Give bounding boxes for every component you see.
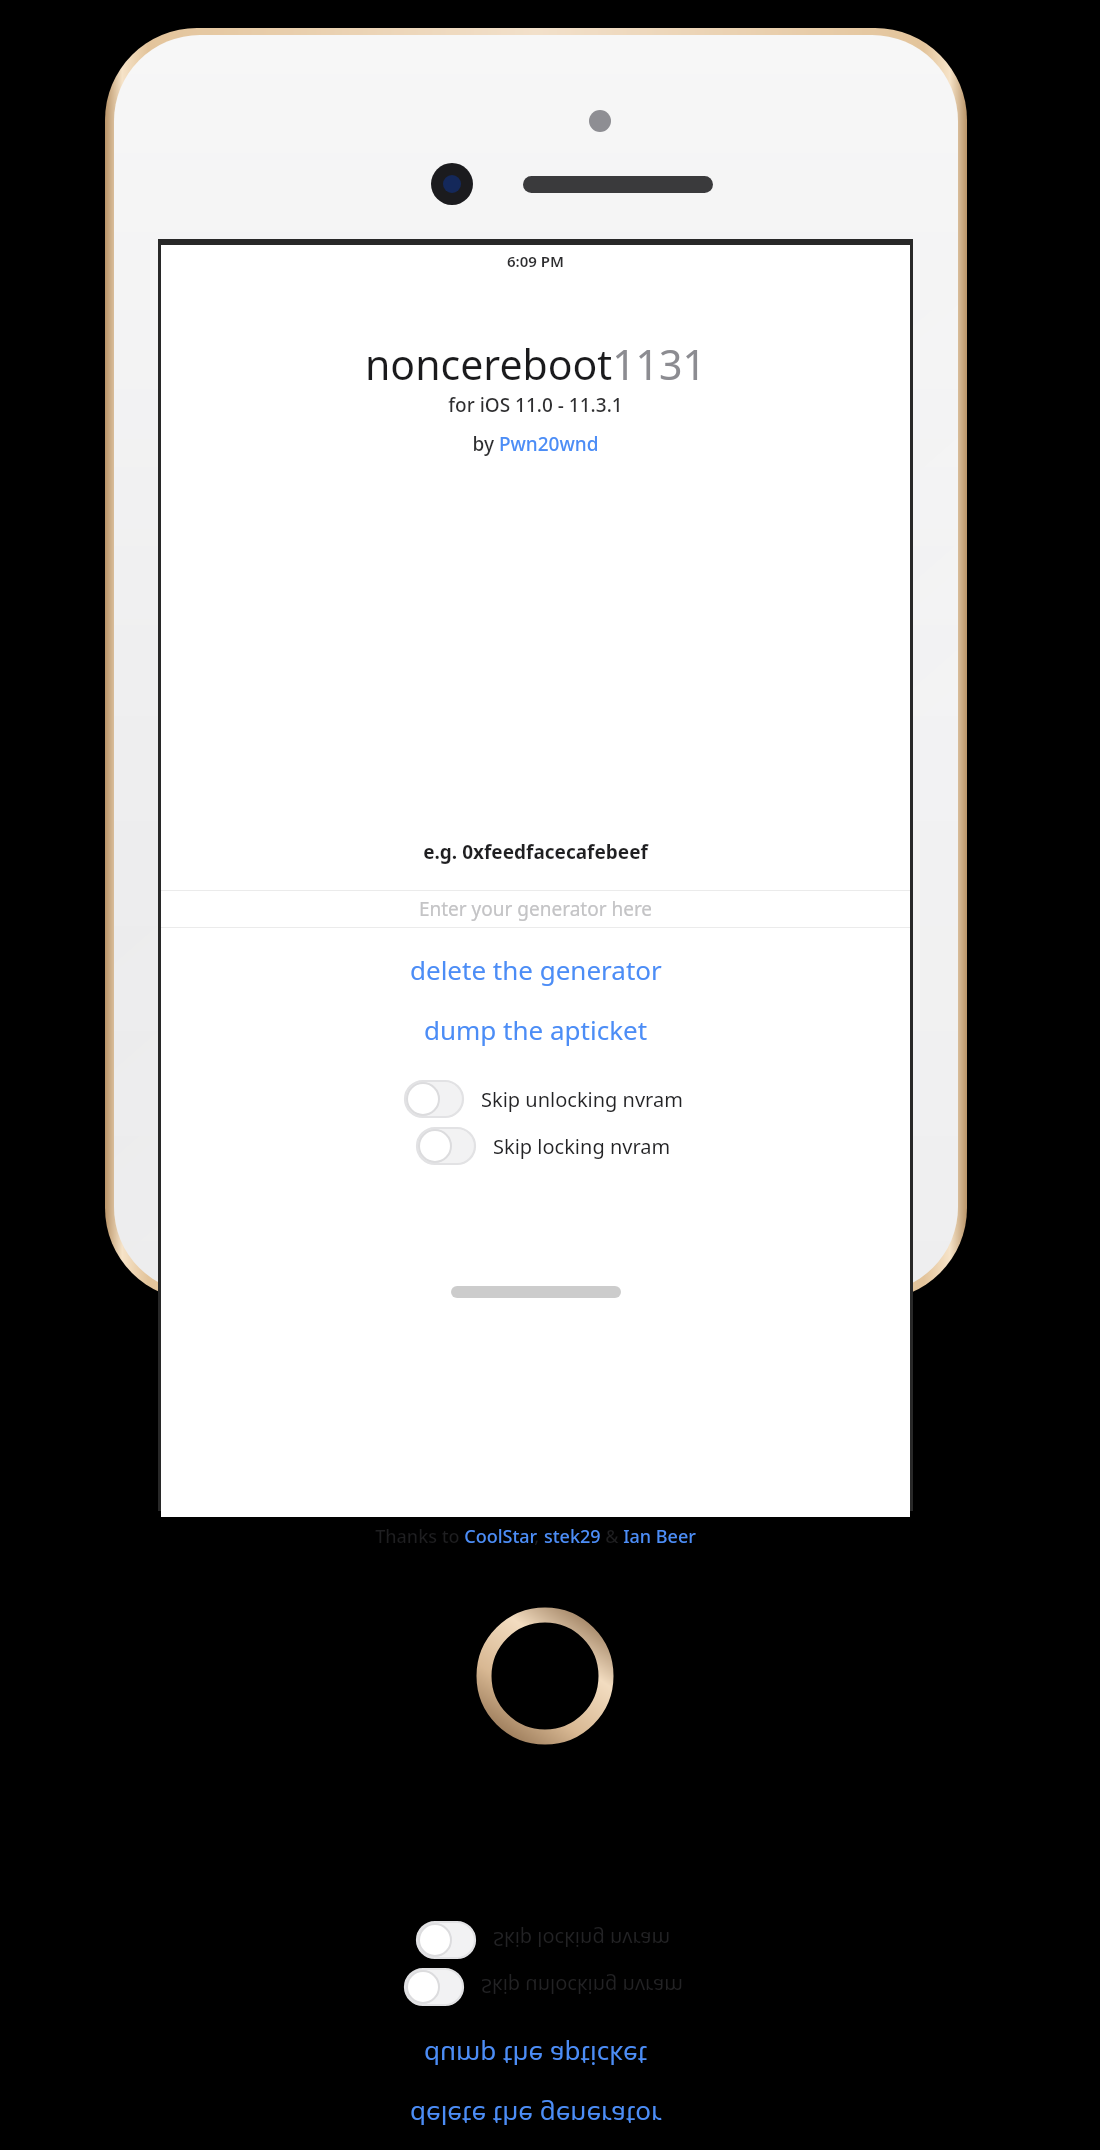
button[interactable]: Skip unlocking nvram xyxy=(405,1077,683,1121)
staticText: Enter your generator here xyxy=(161,896,910,922)
button[interactable]: Skip locking nvram xyxy=(417,1918,671,1962)
staticText: dump the apticket xyxy=(424,2039,648,2074)
staticText: noncereboot1131 xyxy=(161,336,910,392)
staticText: dump the apticket xyxy=(424,1012,648,1047)
staticText: delete the generator xyxy=(410,2099,662,2134)
button[interactable]: delete the generator xyxy=(161,945,910,993)
staticText: 6:09 PM xyxy=(161,251,910,271)
button[interactable]: delete the generator xyxy=(161,2093,910,2141)
button[interactable]: by Pwn20wnd xyxy=(161,431,910,457)
button[interactable]: Skip locking nvram xyxy=(417,1124,671,1168)
button[interactable]: dump the apticket xyxy=(161,2033,910,2081)
staticText: Skip unlocking nvram xyxy=(481,1973,683,2000)
staticText: e.g. 0xfeedfacecafebeef xyxy=(161,839,910,865)
staticText: Skip unlocking nvram xyxy=(481,1086,683,1113)
button[interactable]: Thanks to CoolStar, stek29 & Ian Beer xyxy=(161,1518,910,1554)
staticText: for iOS 11.0 - 11.3.1 xyxy=(161,392,910,418)
staticText: Thanks to CoolStar, stek29 & Ian Beer xyxy=(375,1524,696,1549)
staticText: delete the generator xyxy=(410,952,662,987)
button[interactable]: Enter your generator here xyxy=(161,890,910,928)
staticText: Skip locking nvram xyxy=(493,1926,671,1953)
staticText: by Pwn20wnd xyxy=(161,431,910,457)
staticText: Skip locking nvram xyxy=(493,1133,671,1160)
button[interactable]: dump the apticket xyxy=(161,1005,910,1053)
button[interactable]: Skip unlocking nvram xyxy=(405,1965,683,2009)
